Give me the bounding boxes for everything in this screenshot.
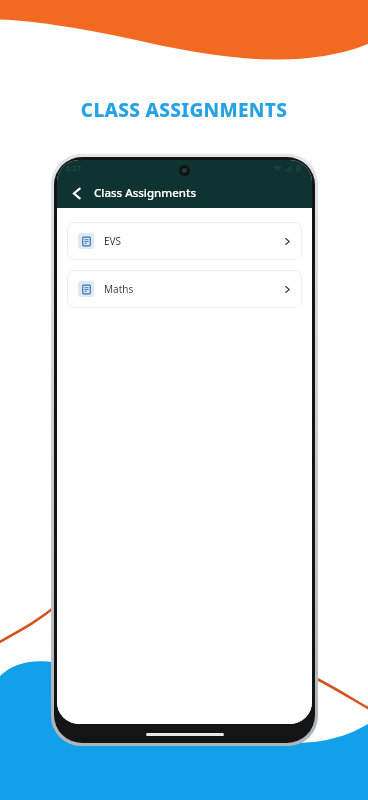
staticText: CLASS ASSIGNMENTS [0,97,368,123]
staticText: Maths [104,282,134,296]
button[interactable]: EVS [67,222,302,260]
staticText: Class Assignments [94,185,197,201]
button[interactable]: Back [65,181,89,205]
button[interactable]: Maths [67,270,302,308]
staticText: EVS [104,234,122,248]
staticText: 6:27 [66,163,81,173]
